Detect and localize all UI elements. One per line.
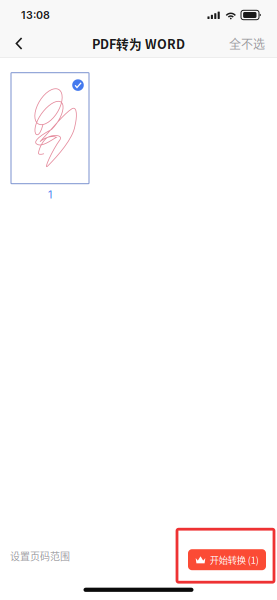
- staticText: 设置页码范围: [10, 549, 70, 563]
- staticText: 开始转换 (1): [210, 553, 259, 566]
- button[interactable]: 开始转换 (1): [188, 549, 266, 570]
- staticText: PDF转为 WORD: [92, 34, 185, 53]
- button[interactable]: 全不选: [222, 29, 272, 58]
- staticText: 全不选: [229, 35, 265, 52]
- staticText: 1: [48, 188, 52, 201]
- button[interactable]: Page 1 selected: [11, 73, 89, 184]
- staticText: 13:08: [21, 8, 50, 21]
- button[interactable]: 设置页码范围: [0, 541, 81, 571]
- button[interactable]: Back: [5, 30, 33, 56]
